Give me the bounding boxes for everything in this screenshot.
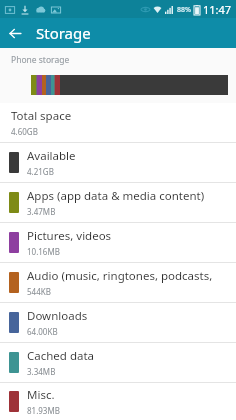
staticText: 544KB (27, 286, 51, 297)
staticText: 4.60GB (11, 126, 38, 137)
staticText: Misc. (27, 387, 55, 403)
staticText: 11:47 (203, 2, 232, 17)
staticText: Pictures, videos (27, 228, 112, 244)
staticText: Phone storage (11, 54, 70, 66)
staticText: Downloads (27, 308, 88, 324)
staticText: Total space (11, 108, 72, 124)
button[interactable]: Misc. (0, 383, 236, 420)
button[interactable]: Apps (app data & media content) (0, 183, 236, 222)
button[interactable]: Available (0, 143, 236, 182)
staticText: Apps (app data & media content) (27, 188, 205, 204)
staticText: Available (27, 148, 76, 164)
staticText: 81.93MB (27, 405, 60, 416)
staticText: 3.47MB (27, 206, 56, 217)
button[interactable]: Pictures, videos (0, 223, 236, 262)
staticText: 3.34MB (27, 366, 56, 377)
staticText: Audio (music, ringtones, podcasts, etc.) (27, 268, 228, 284)
button[interactable]: Downloads (0, 303, 236, 342)
staticText: 88% (177, 5, 191, 15)
staticText: Storage (36, 23, 91, 43)
button[interactable]: Audio (music, ringtones, podcasts, etc.) (0, 263, 236, 302)
button[interactable]: Cached data (0, 343, 236, 382)
staticText: Cached data (27, 348, 95, 364)
button[interactable]: Navigate up (0, 18, 30, 48)
staticText: 4.21GB (27, 166, 54, 177)
button[interactable]: Total space (0, 103, 236, 142)
staticText: 64.00KB (27, 326, 58, 337)
staticText: 10.16MB (27, 246, 60, 257)
